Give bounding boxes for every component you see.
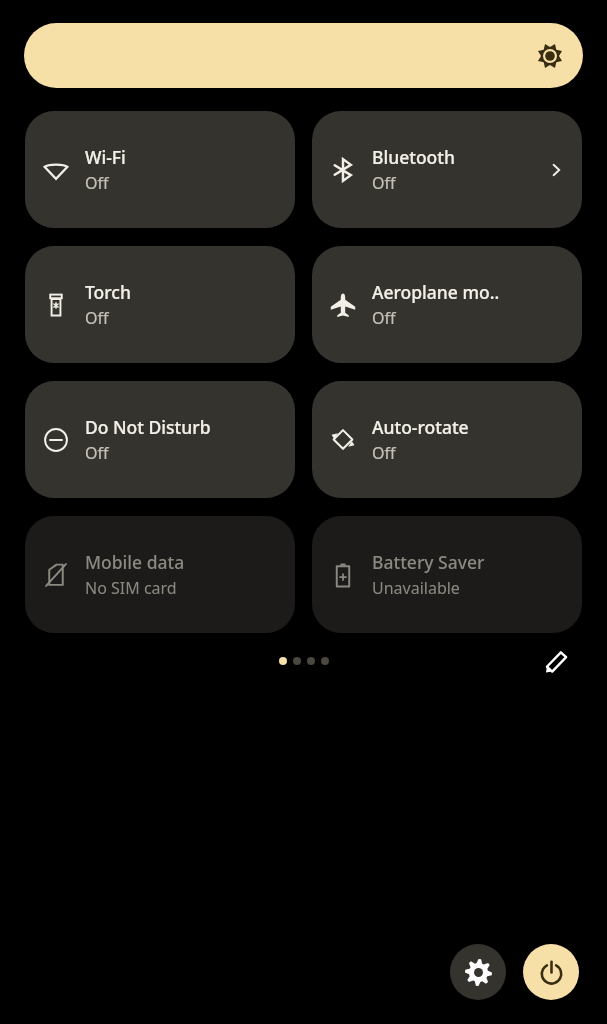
button[interactable]: Edit tiles <box>537 641 577 681</box>
staticText: Bluetooth <box>372 145 455 169</box>
staticText: Torch <box>85 280 131 304</box>
button[interactable]: Wi-Fi <box>25 111 295 228</box>
button[interactable]: Settings <box>450 944 506 1000</box>
button[interactable]: Mobile data <box>25 516 295 633</box>
staticText: Unavailable <box>372 577 460 599</box>
button[interactable]: Aeroplane mo.. <box>312 246 582 363</box>
staticText: Aeroplane mo.. <box>372 280 500 304</box>
button[interactable]: Brightness <box>24 23 583 88</box>
staticText: No SIM card <box>85 577 177 599</box>
staticText: Do Not Disturb <box>85 415 211 439</box>
staticText: Off <box>372 172 396 194</box>
staticText: Battery Saver <box>372 550 485 574</box>
button[interactable]: Power <box>523 944 579 1000</box>
staticText: Off <box>372 442 396 464</box>
staticText: Off <box>85 307 109 329</box>
button[interactable]: Battery Saver <box>312 516 582 633</box>
button[interactable]: Torch <box>25 246 295 363</box>
staticText: Auto-rotate <box>372 415 469 439</box>
staticText: Off <box>372 307 396 329</box>
button[interactable]: Do Not Disturb <box>25 381 295 498</box>
staticText: Wi-Fi <box>85 145 126 169</box>
button[interactable]: Auto-rotate <box>312 381 582 498</box>
staticText: Mobile data <box>85 550 185 574</box>
staticText: Off <box>85 442 109 464</box>
button[interactable]: Bluetooth <box>312 111 582 228</box>
staticText: Off <box>85 172 109 194</box>
